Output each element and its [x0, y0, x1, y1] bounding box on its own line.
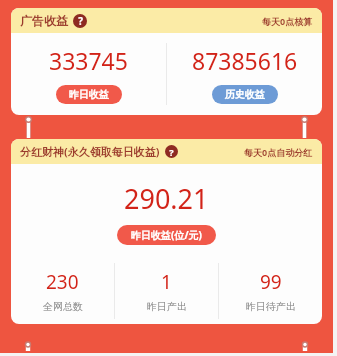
staticText: 230	[46, 269, 79, 295]
button[interactable]: Help	[73, 14, 87, 28]
staticText: ?	[78, 15, 83, 28]
staticText: 99	[260, 269, 282, 295]
staticText: 昨日收益	[69, 88, 109, 101]
staticText: 广告收益	[20, 13, 68, 28]
staticText: 历史收益	[225, 88, 265, 101]
staticText: 全网总数	[43, 300, 83, 313]
staticText: 290.21	[124, 180, 209, 217]
staticText: 昨日产出	[147, 300, 187, 313]
button[interactable]: 99	[219, 269, 322, 313]
button[interactable]: 分红财神(永久领取每日收益)	[11, 139, 322, 324]
staticText: 分红财神(永久领取每日收益)	[20, 144, 160, 159]
staticText: 87385616	[192, 45, 298, 76]
staticText: ?	[169, 146, 174, 158]
button[interactable]: 昨日收益	[56, 85, 122, 104]
button[interactable]: 1	[115, 269, 218, 313]
staticText: 每天0点自动分红	[244, 146, 313, 158]
button[interactable]: 历史收益	[212, 85, 278, 104]
staticText: 昨日收益(位/元)	[131, 228, 202, 242]
button[interactable]: 230	[11, 269, 114, 313]
button[interactable]: 昨日收益(位/元)	[117, 225, 216, 245]
staticText: 每天0点核算	[262, 15, 313, 27]
staticText: 1	[161, 269, 172, 295]
button[interactable]: 广告收益	[11, 8, 322, 115]
staticText: 昨日待产出	[246, 300, 296, 313]
staticText: 333745	[49, 45, 128, 76]
button[interactable]: Help	[165, 145, 178, 158]
